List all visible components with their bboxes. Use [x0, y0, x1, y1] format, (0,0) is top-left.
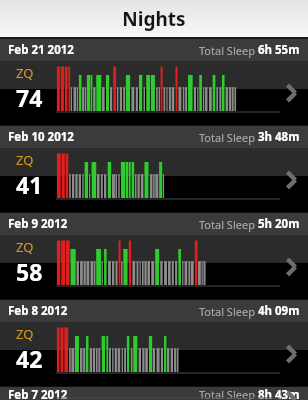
button[interactable]: Feb 8 2012 — [0, 300, 308, 387]
button[interactable]: Open night details — [280, 78, 302, 108]
staticText: 8h 43m — [258, 387, 300, 400]
staticText: Feb 8 2012 — [8, 303, 68, 319]
staticText: Total Sleep — [199, 130, 258, 145]
staticText: Total Sleep — [199, 43, 258, 58]
staticText: 58 — [16, 256, 43, 287]
staticText: 41 — [16, 169, 43, 200]
staticText: 3h 48m — [258, 129, 300, 145]
button[interactable]: Open night details — [280, 165, 302, 195]
staticText: ZQ — [16, 325, 34, 343]
staticText: ZQ — [16, 238, 34, 256]
staticText: 6h 55m — [258, 42, 300, 58]
staticText: Total Sleep — [199, 387, 258, 400]
button[interactable]: Feb 21 2012 — [0, 39, 308, 126]
button[interactable]: Open night details — [280, 339, 302, 369]
staticText: Feb 7 2012 — [8, 387, 68, 400]
staticText: Feb 10 2012 — [8, 129, 74, 145]
staticText: 42 — [16, 343, 43, 374]
button[interactable]: Feb 9 2012 — [0, 213, 308, 300]
staticText: Feb 21 2012 — [8, 42, 74, 58]
staticText: Feb 9 2012 — [8, 216, 68, 232]
button[interactable]: Feb 7 2012 — [0, 387, 308, 400]
staticText: ZQ — [16, 64, 34, 82]
staticText: 74 — [16, 82, 43, 113]
staticText: 4h 09m — [258, 303, 300, 319]
button[interactable]: Feb 10 2012 — [0, 126, 308, 213]
staticText: Total Sleep — [199, 304, 258, 319]
staticText: Nights — [0, 6, 308, 32]
button[interactable]: Open night details — [280, 252, 302, 282]
staticText: ZQ — [16, 151, 34, 169]
staticText: 5h 20m — [258, 216, 300, 232]
staticText: Total Sleep — [199, 217, 258, 232]
